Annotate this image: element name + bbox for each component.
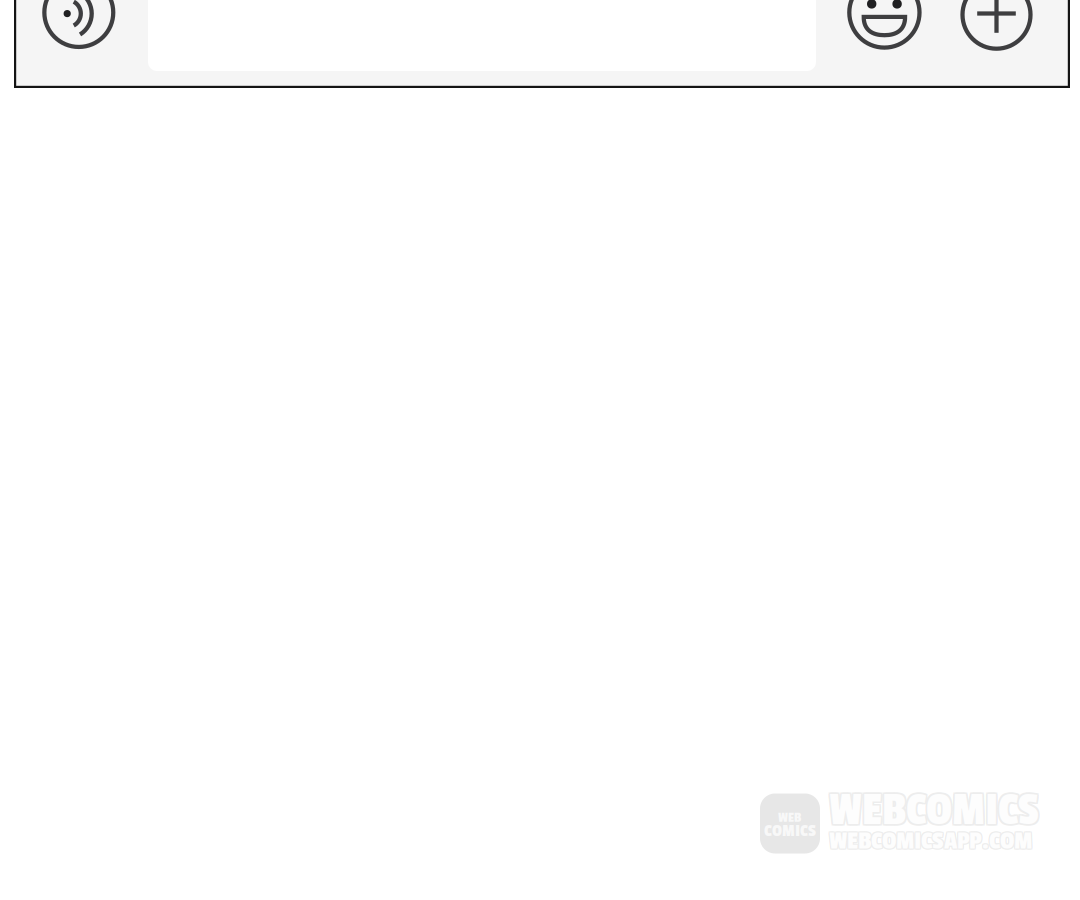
staticText: WEBCOMICS: [830, 782, 1040, 835]
staticText: WEBCOMICSAPP.COM: [830, 825, 1033, 855]
staticText: WEBCOMICSAPP.COM: [830, 826, 1033, 856]
staticText: WEBCOMICS: [829, 782, 1039, 835]
staticText: COMICS: [764, 820, 816, 841]
staticText: WEBCOMICSAPP.COM: [828, 826, 1031, 856]
staticText: WEBCOMICS: [827, 785, 1037, 838]
staticText: WEBCOMICSAPP.COM: [828, 827, 1031, 857]
button[interactable]: More: [954, 0, 1038, 57]
staticText: WEBCOMICS: [827, 783, 1037, 837]
staticText: WEBCOMICS: [829, 783, 1039, 837]
staticText: WEBCOMICS: [827, 782, 1037, 835]
staticText: WEBCOMICS: [829, 785, 1039, 838]
staticText: WEBCOMICSAPP.COM: [829, 826, 1032, 856]
staticText: WEBCOMICS: [830, 785, 1040, 838]
button[interactable]: Voice message: [37, 0, 121, 54]
staticText: WEB: [778, 809, 801, 826]
button[interactable]: Emoji: [842, 0, 926, 54]
staticText: WEBCOMICSAPP.COM: [830, 827, 1033, 857]
staticText: WEBCOMICSAPP.COM: [829, 827, 1032, 857]
staticText: WEBCOMICSAPP.COM: [828, 825, 1031, 855]
staticText: WEBCOMICS: [830, 783, 1040, 837]
staticText: WEBCOMICSAPP.COM: [829, 825, 1032, 855]
